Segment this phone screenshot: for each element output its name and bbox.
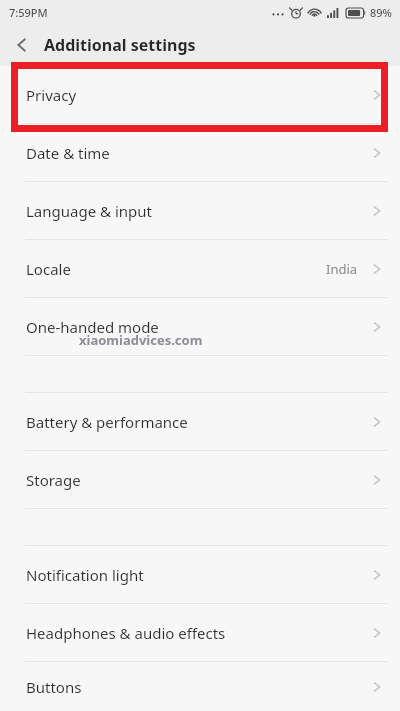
staticText: 7:59PM xyxy=(9,5,48,20)
button[interactable]: Headphones & audio effects xyxy=(0,604,400,661)
button[interactable]: Notification light xyxy=(0,546,400,603)
button[interactable]: Privacy xyxy=(0,66,400,123)
staticText: 89% xyxy=(370,5,392,20)
button[interactable]: Language & input xyxy=(0,182,400,239)
staticText: Notification light xyxy=(26,565,144,585)
staticText: One-handed mode xyxy=(26,317,159,337)
staticText: Privacy xyxy=(26,85,77,105)
button[interactable]: Date & time xyxy=(0,124,400,181)
staticText: Additional settings xyxy=(44,34,196,56)
button[interactable]: Storage xyxy=(0,451,400,508)
button[interactable]: One-handed mode xyxy=(0,298,400,355)
staticText: Storage xyxy=(26,470,81,490)
staticText: Locale xyxy=(26,259,71,279)
button[interactable]: Battery & performance xyxy=(0,393,400,450)
staticText: Buttons xyxy=(26,677,82,697)
staticText: Battery & performance xyxy=(26,412,188,432)
staticText: Date & time xyxy=(26,143,110,163)
button[interactable]: Buttons xyxy=(0,662,400,711)
staticText: India xyxy=(326,260,358,278)
button[interactable]: Locale xyxy=(0,240,400,297)
staticText: Headphones & audio effects xyxy=(26,623,226,643)
button[interactable]: Back xyxy=(0,24,44,66)
staticText: xiaomiadvices.com xyxy=(79,331,203,349)
staticText: Language & input xyxy=(26,201,152,221)
